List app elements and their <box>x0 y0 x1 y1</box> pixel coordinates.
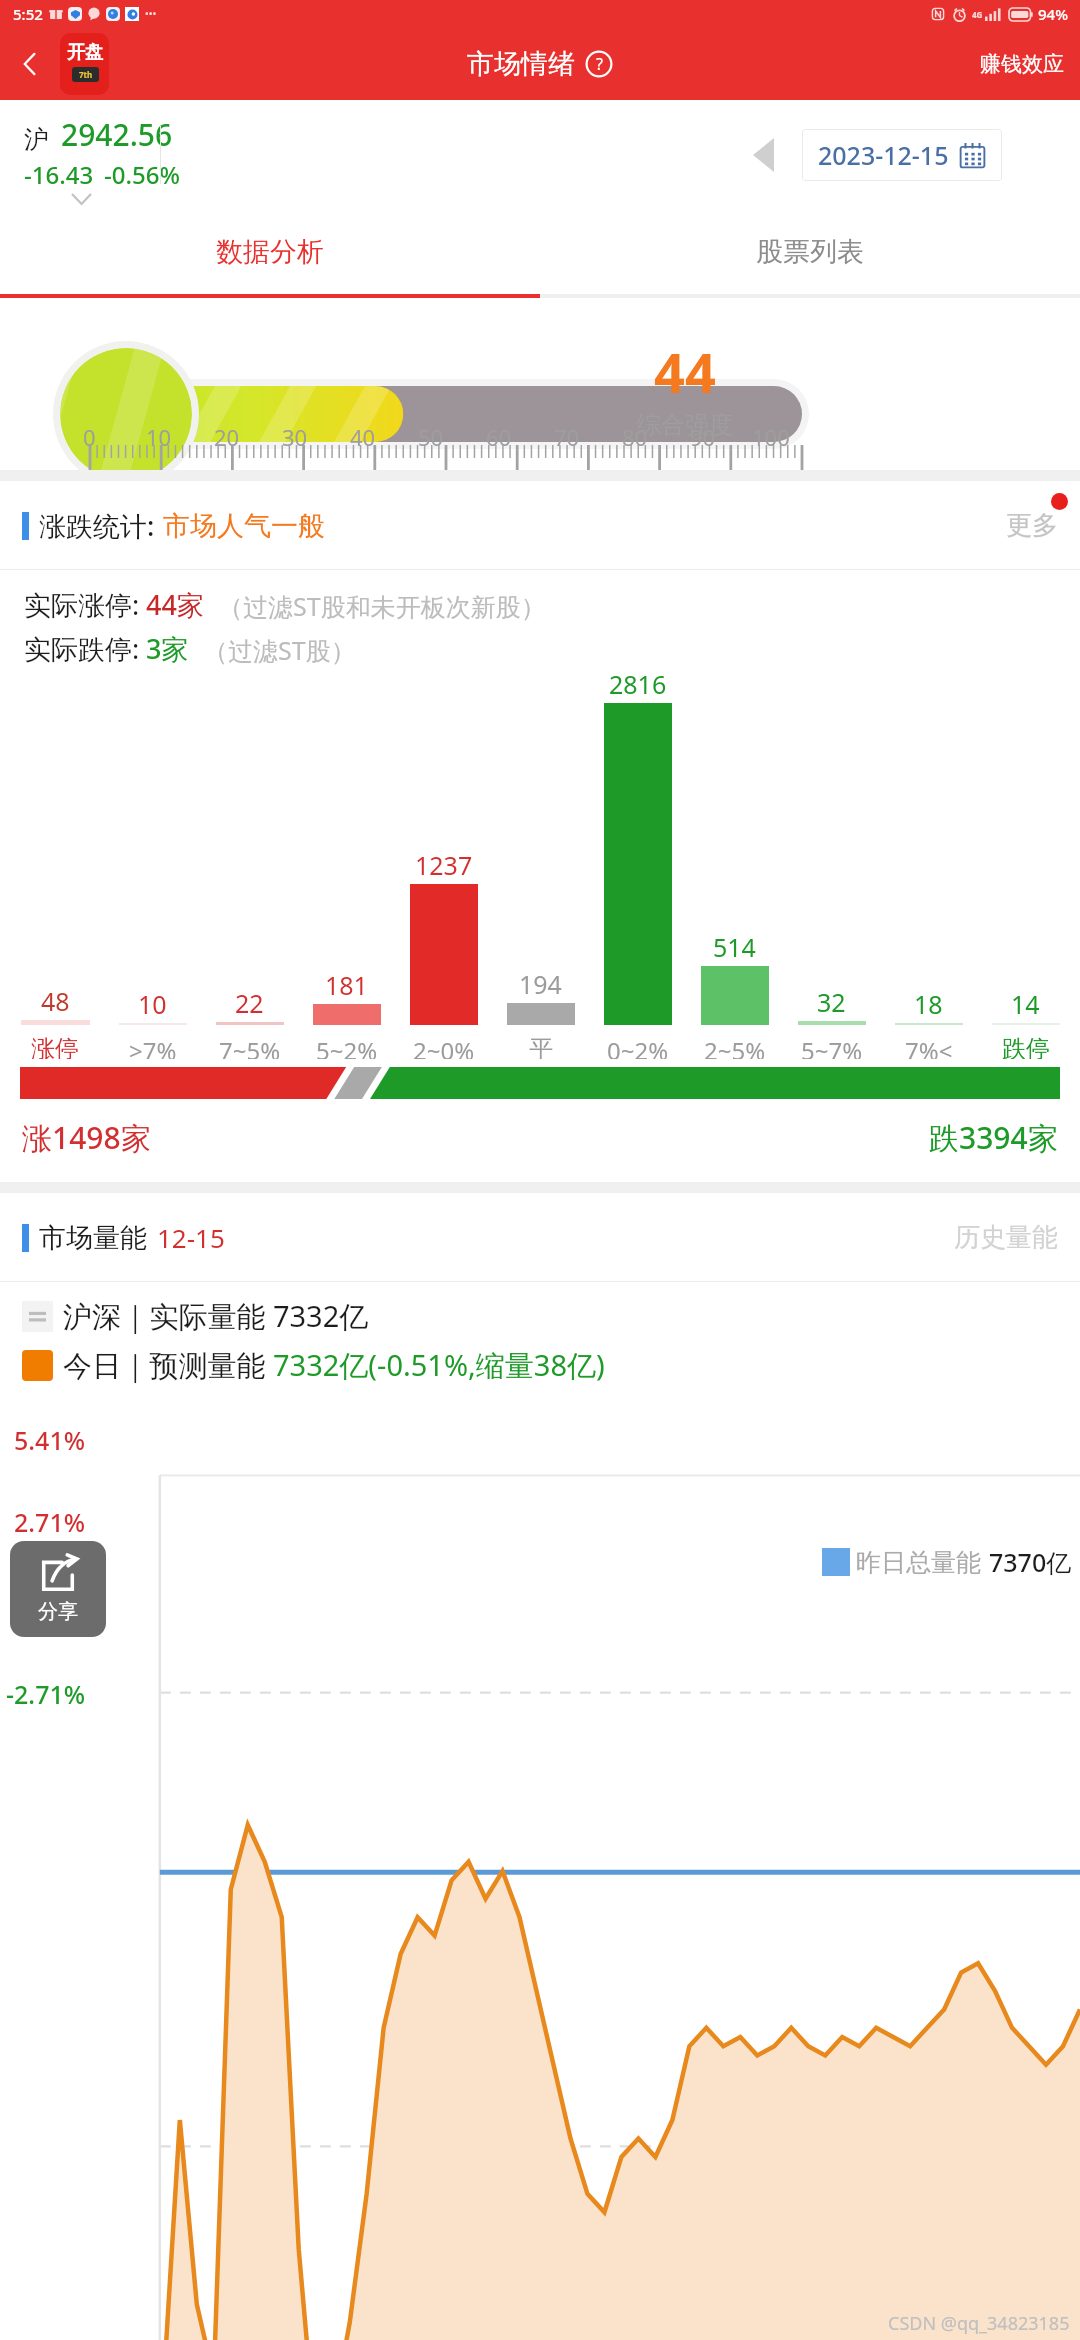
staticText: 沪 <box>24 124 49 155</box>
staticText: 涨1498家 <box>22 1117 151 1158</box>
button[interactable]: 开盘 <box>60 33 109 95</box>
staticText: 10 <box>138 987 167 1021</box>
staticText: （过滤ST股和未开板次新股） <box>218 589 546 623</box>
staticText: 2~0% <box>413 1034 475 1059</box>
staticText: 今日｜预测量能 <box>63 1345 273 1385</box>
staticText: 2942.56 <box>61 114 173 155</box>
button[interactable]: 市场情绪 <box>467 47 613 81</box>
button[interactable]: 更多 <box>998 499 1066 552</box>
staticText: 94% <box>1038 4 1068 24</box>
staticText: 2.71% <box>14 1505 86 1539</box>
staticText: 5~2% <box>316 1034 378 1059</box>
staticText: 80 <box>622 422 648 452</box>
staticText: 昨日总量能 <box>856 1547 981 1578</box>
staticText: 0 <box>83 422 96 452</box>
staticText: 市场人气一般 <box>163 509 325 543</box>
staticText: （过滤ST股） <box>203 633 356 667</box>
staticText: >7% <box>129 1034 177 1059</box>
staticText: 30 <box>282 422 308 452</box>
staticText: 44家 <box>146 586 204 623</box>
staticText: ? <box>596 53 603 75</box>
staticText: 市场情绪 <box>467 47 575 81</box>
staticText: 5:52 <box>13 4 43 24</box>
button[interactable]: 赚钱效应 <box>976 43 1068 85</box>
staticText: 44 <box>654 335 716 409</box>
staticText: 50 <box>418 422 444 452</box>
staticText: 4G <box>972 9 983 20</box>
button[interactable]: 历史量能 <box>948 1211 1064 1264</box>
staticText: -0.56% <box>104 158 180 191</box>
staticText: 3家 <box>146 630 189 667</box>
button[interactable]: 数据分析 <box>0 210 540 294</box>
staticText: 14 <box>1011 987 1040 1021</box>
staticText: 实际涨停: <box>24 586 140 623</box>
staticText: 70 <box>554 422 580 452</box>
staticText: 跌3394家 <box>929 1117 1058 1158</box>
staticText: 0~2% <box>607 1034 669 1059</box>
button[interactable]: 前一日 <box>740 132 786 178</box>
staticText: 181 <box>325 968 368 1002</box>
staticText: -16.43 <box>24 158 94 191</box>
staticText: 2816 <box>609 667 667 701</box>
staticText: 1237 <box>415 848 473 882</box>
staticText: 沪深｜实际量能 7332亿 <box>63 1296 369 1336</box>
staticText: 10 <box>146 422 172 452</box>
staticText: 48 <box>41 984 70 1018</box>
staticText: 7370亿 <box>989 1545 1072 1579</box>
staticText: 历史量能 <box>954 1221 1058 1254</box>
staticText: 5~7% <box>801 1034 863 1059</box>
staticText: 跌停 <box>1002 1034 1050 1059</box>
staticText: 32 <box>817 985 846 1019</box>
staticText: 实际跌停: <box>24 630 140 667</box>
staticText: 市场量能 <box>39 1221 147 1255</box>
button[interactable]: 2023-12-15 <box>802 129 1002 181</box>
staticText: 股票列表 <box>756 235 864 269</box>
staticText: 7~5% <box>219 1034 281 1059</box>
staticText: 100 <box>752 422 790 452</box>
button[interactable]: 股票列表 <box>540 210 1080 294</box>
staticText: 平 <box>529 1034 553 1059</box>
staticText: 22 <box>235 986 264 1020</box>
button[interactable]: 分享 <box>10 1541 106 1637</box>
staticText: 数据分析 <box>216 235 324 269</box>
staticText: 分享 <box>38 1599 78 1624</box>
staticText: 5.41% <box>14 1423 86 1457</box>
staticText: 7th <box>79 69 93 80</box>
staticText: 18 <box>914 987 943 1021</box>
staticText: 开盘 <box>67 41 103 64</box>
staticText: 更多 <box>1006 509 1058 542</box>
staticText: ••• <box>145 7 157 21</box>
staticText: 7332亿(-0.51%,缩量38亿) <box>273 1345 605 1385</box>
staticText: 涨停 <box>31 1034 79 1059</box>
button[interactable]: 返回 <box>4 38 56 90</box>
staticText: 60 <box>486 422 512 452</box>
staticText: 综合强度 <box>637 410 733 440</box>
staticText: -2.71% <box>6 1677 86 1711</box>
staticText: 40 <box>350 422 376 452</box>
staticText: CSDN @qq_34823185 <box>888 2311 1070 2336</box>
staticText: 20 <box>214 422 240 452</box>
staticText: 2~5% <box>704 1034 766 1059</box>
button[interactable]: 沪 <box>24 114 180 191</box>
staticText: 90 <box>690 422 716 452</box>
staticText: 2023-12-15 <box>818 138 949 172</box>
staticText: 514 <box>713 930 756 964</box>
staticText: 涨跌统计: <box>39 507 155 544</box>
staticText: 赚钱效应 <box>980 51 1064 77</box>
staticText: 7%< <box>905 1034 953 1059</box>
staticText: 194 <box>519 967 562 1001</box>
staticText: 12-15 <box>157 1220 225 1255</box>
